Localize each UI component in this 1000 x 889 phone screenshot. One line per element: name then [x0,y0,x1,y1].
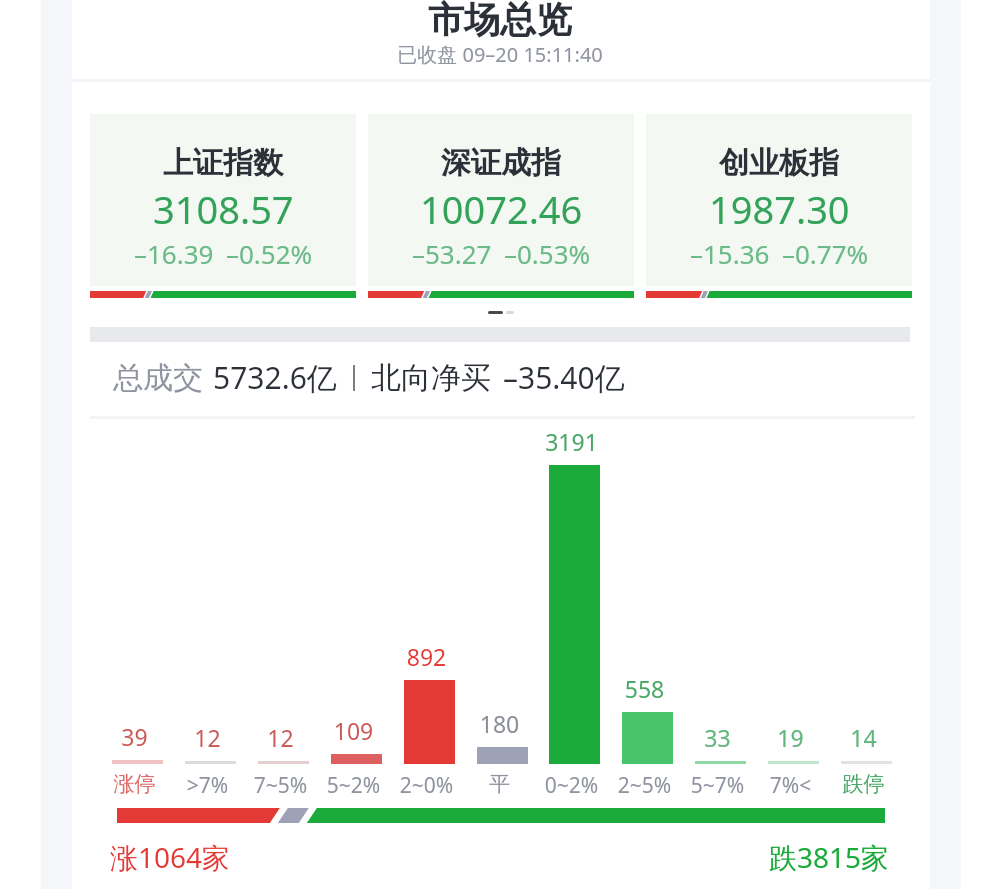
button[interactable] [831,720,902,794]
staticText: 39 [85,721,184,752]
staticText: 14 [814,722,913,753]
staticText: 涨1064家 [110,838,231,876]
staticText: 深证成指 [441,144,561,182]
staticText: 558 [595,673,694,704]
staticText: 创业板指 [719,144,839,182]
staticText: 5~7% [680,771,755,800]
button[interactable]: Page indicator [480,303,522,321]
staticText: –16.39 [134,236,214,271]
staticText: 5732.6亿 [213,357,337,398]
staticText: –53.27 [412,236,492,271]
staticText: 北向净买 [371,359,491,397]
button[interactable] [394,639,465,794]
button[interactable] [758,720,829,794]
button[interactable]: 深证成指 [368,114,634,299]
staticText: 1987.30 [709,183,850,235]
staticText: 0~2% [534,771,609,800]
staticText: –15.36 [690,236,770,271]
staticText: –35.40亿 [503,357,625,398]
staticText: 33 [668,722,767,753]
staticText: 市场总览 [0,0,1000,42]
staticText: 已收盘 09–20 15:11:40 [0,41,1000,68]
staticText: –0.77% [782,236,869,271]
staticText: 19 [741,722,840,753]
staticText: 3191 [522,426,621,457]
staticText: 12 [231,722,330,753]
button[interactable] [612,671,683,794]
button[interactable]: 跌3815家 [769,838,890,876]
staticText: 2~5% [607,771,682,800]
staticText: 跌停 [826,771,901,797]
button[interactable] [685,720,756,794]
button[interactable] [175,720,246,794]
staticText: 7~5% [243,771,318,800]
staticText: 10072.46 [420,183,583,235]
staticText: >7% [170,771,245,800]
staticText: –0.52% [226,236,313,271]
button[interactable] [321,713,392,794]
staticText: 892 [377,641,476,672]
staticText: 7%< [753,771,828,800]
staticText: 180 [450,708,549,739]
staticText: 涨停 [97,771,172,797]
button[interactable]: 创业板指 [646,114,912,299]
button[interactable] [539,424,610,794]
button[interactable] [467,706,538,794]
button[interactable] [102,719,173,794]
staticText: 平 [462,771,537,797]
staticText: 上证指数 [163,144,283,182]
staticText: 3108.57 [153,183,294,235]
staticText: 5~2% [316,771,391,800]
button[interactable]: 上证指数 [90,114,356,299]
staticText: 跌3815家 [769,838,890,876]
staticText: 总成交 [113,359,203,397]
staticText: 2~0% [389,771,464,800]
staticText: 109 [304,715,403,746]
button[interactable]: 总成交 [113,357,625,398]
button[interactable] [248,720,319,794]
staticText: –0.53% [504,236,591,271]
staticText: 12 [158,722,257,753]
button[interactable]: 涨1064家 [110,838,231,876]
